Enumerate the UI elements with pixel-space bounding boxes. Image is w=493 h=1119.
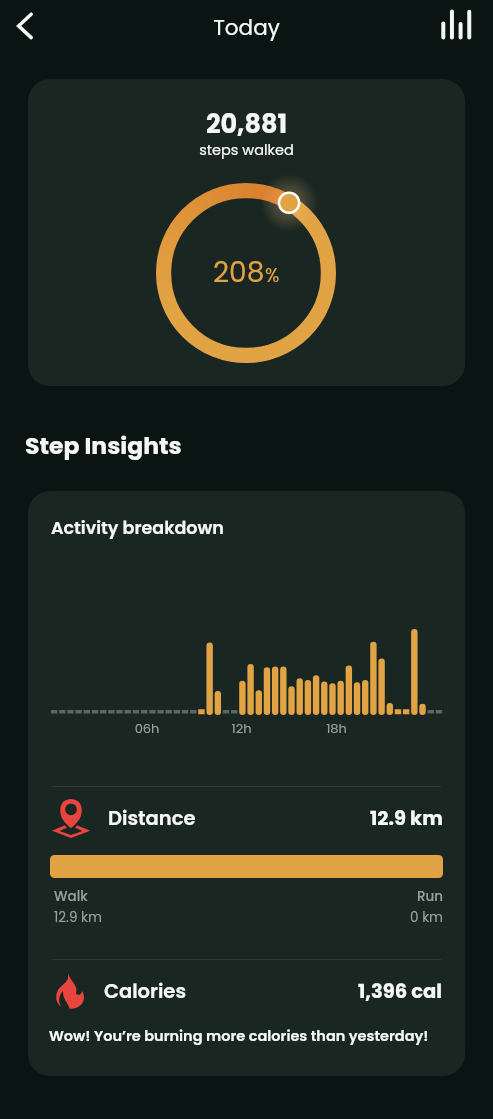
button[interactable]: 20,881: [28, 79, 465, 386]
button[interactable]: Distance: [50, 796, 443, 840]
staticText: 1,396 cal: [358, 978, 443, 1005]
staticText: 20,881: [28, 106, 465, 142]
staticText: %: [265, 262, 280, 289]
staticText: 06h: [130, 719, 164, 737]
staticText: Step Insights: [25, 429, 182, 462]
button[interactable]: Back: [0, 1, 48, 49]
staticText: 12h: [224, 719, 259, 737]
staticText: Calories: [104, 978, 187, 1005]
staticText: Distance: [108, 805, 196, 832]
staticText: Today: [0, 12, 493, 42]
staticText: 208: [213, 253, 265, 292]
staticText: 12.9 km: [54, 908, 102, 927]
staticText: Wow! You’re burning more calories than y…: [49, 1026, 429, 1046]
staticText: Walk: [54, 887, 88, 906]
staticText: 12.9 km: [370, 805, 443, 832]
staticText: 0 km: [50, 908, 443, 927]
staticText: 18h: [319, 719, 354, 737]
staticText: Activity breakdown: [51, 516, 224, 541]
button[interactable]: Statistics: [435, 1, 481, 47]
staticText: steps walked: [28, 140, 465, 160]
staticText: Run: [50, 887, 443, 906]
button[interactable]: Calories: [50, 969, 443, 1013]
